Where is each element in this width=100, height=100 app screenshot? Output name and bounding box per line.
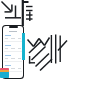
button[interactable] xyxy=(3,26,23,78)
